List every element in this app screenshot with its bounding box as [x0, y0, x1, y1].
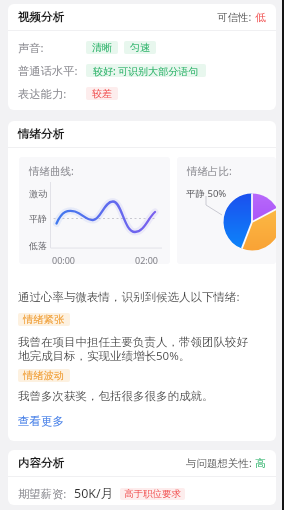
staticText: 平静 50% [186, 187, 227, 200]
button[interactable]: 清晰 [86, 41, 118, 54]
staticText: 激动 [29, 188, 47, 199]
staticText: 普通话水平: [18, 63, 78, 78]
staticText: 02:00 [135, 254, 159, 264]
staticText: 我曾在项目中担任主要负责人，带领团队较好地完成目标，实现业绩增长50%。 [18, 335, 256, 363]
button[interactable]: 较差 [86, 87, 118, 100]
staticText: 情绪紧张 [23, 313, 65, 326]
staticText: 低 [255, 11, 266, 24]
staticText: 清晰 [92, 41, 112, 54]
button[interactable]: 查看更多 [18, 414, 64, 428]
staticText: 较差 [92, 87, 112, 100]
staticText: 匀速 [130, 41, 150, 54]
button[interactable]: 匀速 [124, 41, 156, 54]
staticText: 内容分析 [18, 456, 64, 470]
staticText: 与问题想关性: [186, 456, 255, 470]
button[interactable]: 高于职位要求 [120, 488, 185, 500]
staticText: 情绪占比: [187, 164, 232, 178]
staticText: 视频分析 [18, 10, 64, 24]
staticText: 较好: 可识别大部分语句 [93, 64, 199, 77]
staticText: 00:00 [52, 254, 76, 264]
staticText: 我曾多次获奖，包括很多很多的成就。 [18, 389, 214, 403]
staticText: 情绪曲线: [29, 164, 74, 178]
staticText: 可信性: [217, 10, 255, 24]
staticText: 高 [255, 457, 266, 470]
button[interactable]: 较好: 可识别大部分语句 [86, 64, 206, 77]
button[interactable]: 情绪紧张 [18, 313, 70, 326]
staticText: 通过心率与微表情，识别到候选人以下情绪: [18, 289, 240, 305]
staticText: 平静 [29, 213, 47, 224]
staticText: 情绪分析 [18, 127, 64, 141]
staticText: 期望薪资: [18, 486, 67, 501]
staticText: 查看更多 [18, 414, 64, 428]
staticText: 表达能力: [18, 86, 67, 101]
button[interactable]: 情绪波动 [18, 369, 70, 382]
staticText: 50K/月 [74, 485, 114, 502]
staticText: 情绪波动 [23, 369, 65, 382]
staticText: 声音: [18, 40, 44, 55]
staticText: 低落 [29, 240, 47, 251]
staticText: 高于职位要求 [124, 488, 181, 500]
